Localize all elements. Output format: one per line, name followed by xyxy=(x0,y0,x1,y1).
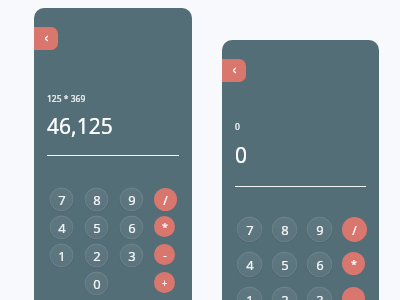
button[interactable]: 8 xyxy=(271,216,298,243)
staticText: 7 xyxy=(246,221,254,239)
staticText: 6 xyxy=(316,256,324,274)
staticText: / xyxy=(352,222,357,238)
staticText: * xyxy=(162,220,168,234)
staticText: 5 xyxy=(93,219,101,237)
button[interactable]: Multiply xyxy=(342,252,365,275)
staticText: 3 xyxy=(316,291,324,300)
button[interactable]: 5 xyxy=(271,251,298,278)
button[interactable]: 9 xyxy=(306,216,333,243)
staticText: 5 xyxy=(281,256,289,274)
button[interactable]: 3 xyxy=(306,286,333,300)
button[interactable]: Multiply xyxy=(154,216,175,237)
button[interactable]: 7 xyxy=(236,216,263,243)
staticText: 46,125 xyxy=(47,112,113,141)
staticText: 9 xyxy=(316,221,324,239)
button[interactable]: 5 xyxy=(84,215,109,240)
button[interactable]: 1 xyxy=(236,286,263,300)
staticText: 1 xyxy=(58,247,66,265)
staticText: 125 * 369 xyxy=(47,93,86,105)
button[interactable]: Back xyxy=(34,27,58,50)
staticText: * xyxy=(351,257,357,271)
staticText: 4 xyxy=(58,219,66,237)
button[interactable]: 4 xyxy=(236,251,263,278)
button[interactable]: 2 xyxy=(84,243,109,268)
staticText: / xyxy=(163,192,168,208)
staticText: 6 xyxy=(128,219,136,237)
button[interactable]: Subtract xyxy=(342,287,365,300)
button[interactable]: Back xyxy=(222,59,246,82)
staticText: 0 xyxy=(235,141,248,170)
button[interactable]: Subtract xyxy=(154,244,175,265)
staticText: 7 xyxy=(58,191,66,209)
staticText: + xyxy=(161,276,168,290)
button[interactable]: 6 xyxy=(306,251,333,278)
button[interactable]: 4 xyxy=(49,215,74,240)
staticText: 1 xyxy=(246,291,254,300)
staticText: - xyxy=(163,248,167,262)
button[interactable]: Add xyxy=(154,272,175,293)
staticText: 0 xyxy=(93,275,101,293)
button[interactable]: Divide xyxy=(342,217,367,242)
staticText: 9 xyxy=(128,191,136,209)
button[interactable]: 7 xyxy=(49,187,74,212)
staticText: 2 xyxy=(281,291,289,300)
button[interactable]: 6 xyxy=(119,215,144,240)
staticText: 3 xyxy=(128,247,136,265)
button[interactable]: 0 xyxy=(84,271,109,296)
staticText: 8 xyxy=(93,191,101,209)
staticText: 0 xyxy=(235,121,240,133)
button[interactable]: 8 xyxy=(84,187,109,212)
button[interactable]: 1 xyxy=(49,243,74,268)
button[interactable]: Divide xyxy=(154,188,177,211)
button[interactable]: 9 xyxy=(119,187,144,212)
staticText: 2 xyxy=(93,247,101,265)
staticText: 4 xyxy=(246,256,254,274)
button[interactable]: 2 xyxy=(271,286,298,300)
staticText: 8 xyxy=(281,221,289,239)
button[interactable]: 3 xyxy=(119,243,144,268)
